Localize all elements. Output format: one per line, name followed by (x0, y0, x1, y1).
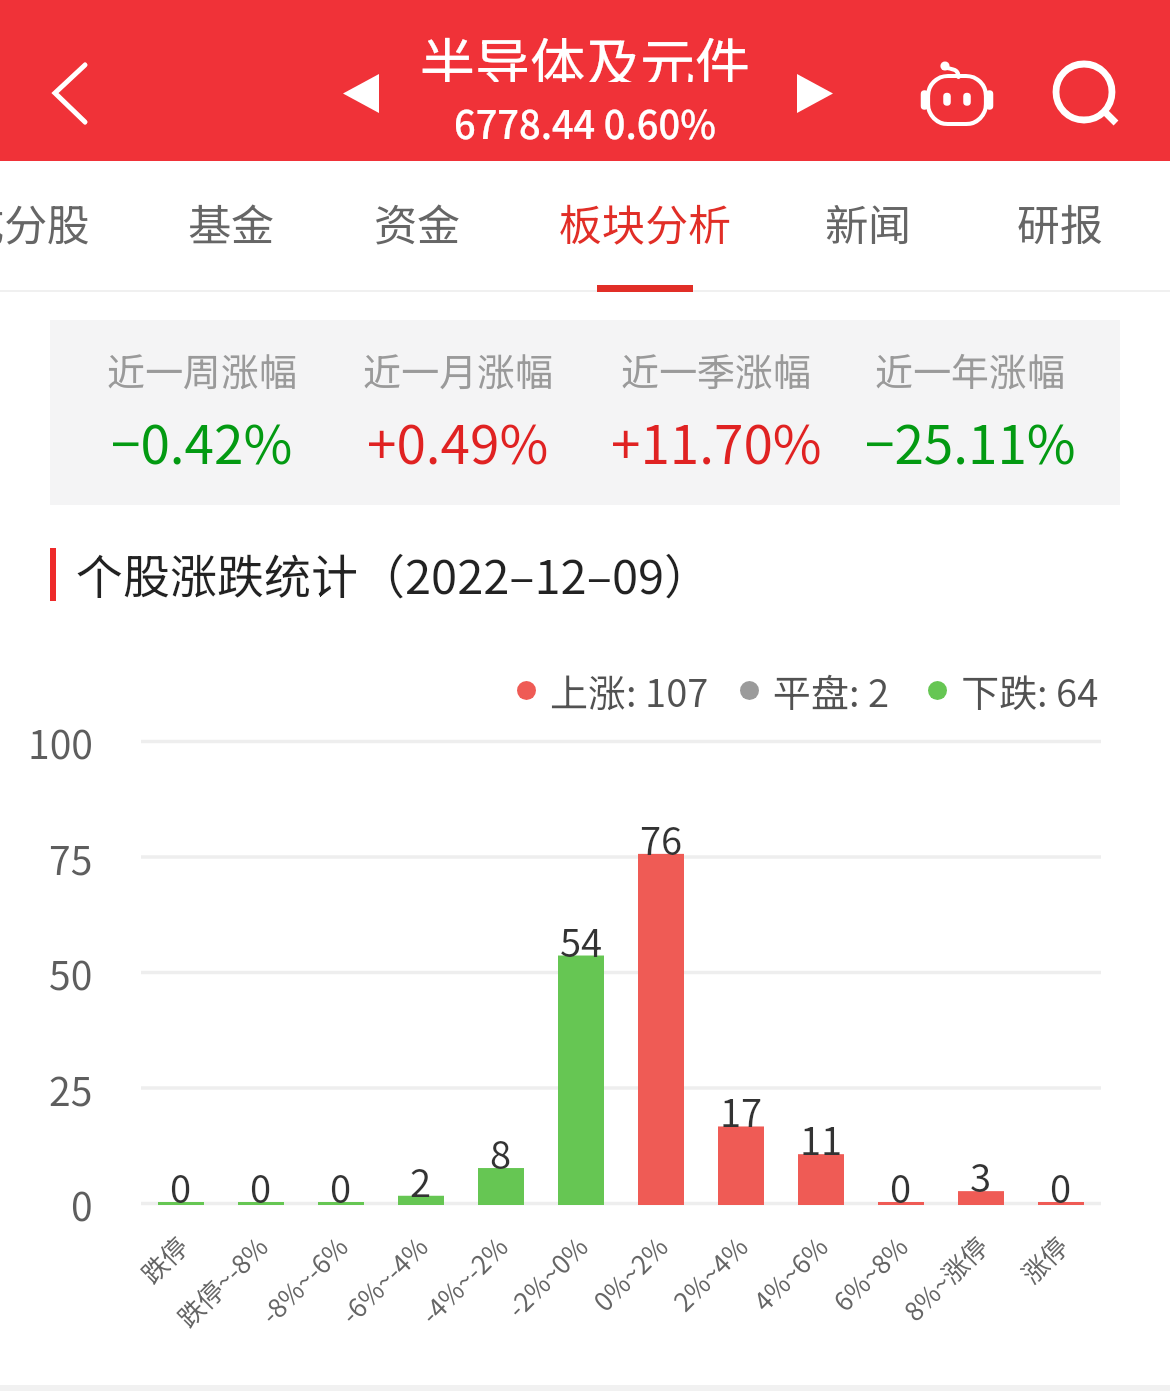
staticText: 基金 (188, 191, 274, 253)
staticText: -4%~-2% (411, 1228, 515, 1332)
staticText: 0 (890, 1159, 912, 1213)
staticText: 0%~2% (583, 1228, 675, 1319)
staticText: 近一月涨幅 (363, 342, 554, 392)
staticText: 成分股 (0, 191, 90, 253)
staticText: 近一年涨幅 (875, 342, 1066, 392)
staticText: 0 (71, 1176, 93, 1232)
button[interactable]: 板块分析 (535, 156, 755, 287)
staticText: 54 (560, 913, 603, 967)
staticText: 0 (250, 1159, 272, 1213)
staticText: 平盘: 2 (773, 663, 890, 718)
staticText: 3 (970, 1148, 992, 1202)
button[interactable]: AI assistant (901, 37, 1013, 149)
staticText: 涨停 (1011, 1228, 1075, 1292)
staticText: 跌停~-8% (168, 1228, 275, 1335)
button[interactable]: Back (24, 32, 144, 152)
staticText: 6%~8% (823, 1228, 915, 1319)
staticText: 8 (490, 1125, 512, 1179)
staticText: 4%~6% (743, 1228, 835, 1319)
button[interactable]: 成分股 (0, 156, 135, 287)
staticText: -2%~0% (497, 1228, 595, 1326)
staticText: 0 (1050, 1159, 1072, 1213)
button[interactable]: 平盘: 2 (740, 660, 890, 720)
button[interactable]: 资金 (307, 156, 527, 287)
staticText: 76 (640, 811, 683, 865)
staticText: 资金 (374, 191, 460, 253)
button[interactable]: 新闻 (758, 156, 978, 287)
staticText: -8%~-6% (251, 1228, 355, 1332)
staticText: 近一季涨幅 (621, 342, 812, 392)
staticText: 下跌: 64 (961, 663, 1099, 718)
staticText: 50 (49, 945, 93, 1001)
staticText: 2%~4% (663, 1228, 755, 1319)
staticText: 新闻 (825, 191, 911, 253)
staticText: 跌停 (131, 1228, 195, 1292)
button[interactable]: 上涨: 107 (517, 660, 709, 720)
staticText: 近一周涨幅 (107, 342, 298, 392)
staticText: 25 (49, 1061, 93, 1117)
button[interactable]: 下跌: 64 (928, 660, 1099, 720)
staticText: -6%~-4% (331, 1228, 435, 1332)
staticText: 半导体及元件 (420, 20, 751, 82)
staticText: 11 (800, 1111, 843, 1165)
button[interactable]: Next sector (769, 47, 861, 139)
staticText: 100 (28, 714, 93, 770)
staticText: +0.49% (367, 403, 549, 473)
staticText: 个股涨跌统计（2022–12–09） (76, 539, 712, 607)
staticText: 板块分析 (559, 191, 731, 253)
staticText: 75 (49, 830, 93, 886)
staticText: 2 (410, 1153, 432, 1207)
staticText: 0 (330, 1159, 352, 1213)
button[interactable]: Previous sector (315, 47, 407, 139)
staticText: 17 (720, 1083, 763, 1137)
staticText: +11.70% (611, 403, 822, 473)
staticText: 研报 (1017, 191, 1103, 253)
button[interactable]: Search (1028, 36, 1140, 148)
staticText: −25.11% (865, 403, 1076, 473)
staticText: −0.42% (111, 403, 293, 473)
button[interactable]: 研报 (950, 156, 1170, 287)
staticText: 8%~涨停 (894, 1228, 995, 1329)
staticText: 上涨: 107 (550, 663, 709, 718)
button[interactable]: 基金 (121, 156, 341, 287)
staticText: 6778.44 0.60% (454, 95, 716, 143)
staticText: 0 (170, 1159, 192, 1213)
